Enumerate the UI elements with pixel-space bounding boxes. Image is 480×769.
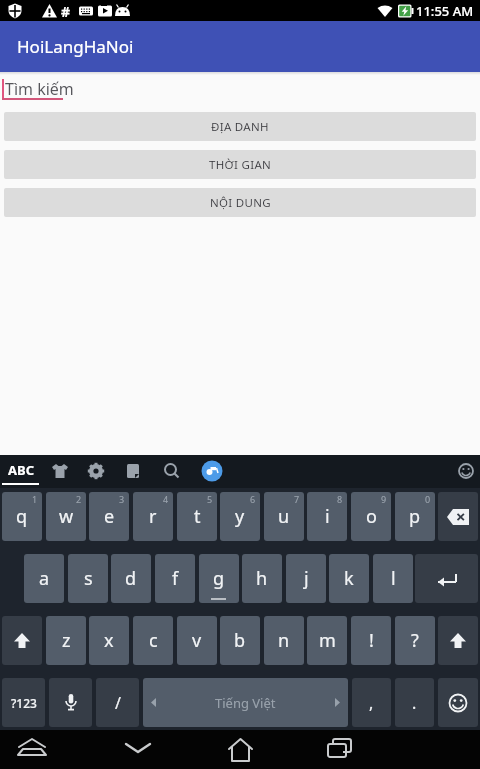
staticText: 2 (76, 493, 82, 505)
button[interactable]: k (329, 554, 369, 603)
staticText: 8 (337, 493, 343, 505)
staticText: v (192, 628, 202, 653)
staticText: ABC (8, 461, 34, 479)
button[interactable]: q (2, 492, 42, 541)
staticText: r (149, 504, 157, 529)
staticText: l (391, 566, 396, 591)
staticText: 9 (381, 493, 387, 505)
staticText: THỜI GIAN (209, 157, 272, 173)
button[interactable]: x (89, 616, 129, 665)
button[interactable]: z (46, 616, 86, 665)
staticText: ?123 (11, 695, 37, 711)
button[interactable]: , (352, 678, 391, 727)
button[interactable]: e (89, 492, 129, 541)
staticText: ĐỊA DANH (211, 119, 269, 135)
staticText: o (366, 504, 377, 529)
button[interactable] (14, 738, 50, 762)
button[interactable] (438, 678, 478, 727)
staticText: c (149, 628, 158, 653)
button[interactable]: g (199, 554, 239, 603)
button[interactable]: l (373, 554, 413, 603)
button[interactable]: p (395, 492, 435, 541)
staticText: s (84, 566, 93, 591)
button[interactable]: ĐỊA DANH (4, 112, 476, 141)
staticText: m (319, 628, 336, 653)
button[interactable]: NỘI DUNG (4, 188, 476, 217)
button[interactable]: m (307, 616, 347, 665)
staticText: 11:55 AM (416, 2, 474, 20)
staticText: 4 (163, 493, 169, 505)
staticText: / (115, 692, 121, 714)
button[interactable]: . (395, 678, 434, 727)
staticText: x (104, 628, 114, 653)
button[interactable]: ! (351, 616, 391, 665)
button[interactable]: c (133, 616, 173, 665)
staticText: Tiếng Việt (215, 694, 276, 712)
staticText: u (278, 504, 290, 529)
button[interactable]: h (242, 554, 282, 603)
staticText: t (194, 504, 201, 529)
staticText: 6 (250, 493, 256, 505)
staticText: g (213, 566, 225, 591)
staticText: . (412, 692, 417, 714)
button[interactable]: n (264, 616, 304, 665)
staticText: w (59, 504, 74, 529)
staticText: ! (369, 628, 374, 653)
staticText: 0 (425, 493, 431, 505)
staticText: z (62, 628, 71, 653)
button[interactable]: a (24, 554, 64, 603)
staticText: i (325, 504, 330, 529)
staticText: k (344, 566, 354, 591)
staticText: , (369, 692, 374, 714)
button[interactable]: f (155, 554, 195, 603)
button[interactable]: Tìm kiếm (0, 72, 480, 100)
staticText: 3 (119, 493, 125, 505)
button[interactable] (2, 616, 42, 665)
staticText: 5 (207, 493, 213, 505)
button[interactable] (122, 740, 154, 758)
staticText: j (304, 566, 309, 591)
button[interactable]: w (46, 492, 86, 541)
staticText: HoiLangHaNoi (17, 35, 134, 58)
button[interactable] (227, 737, 254, 763)
staticText: n (278, 628, 290, 653)
button[interactable]: THỜI GIAN (4, 150, 476, 179)
button[interactable] (415, 554, 478, 603)
button[interactable]: v (177, 616, 217, 665)
button[interactable]: o (351, 492, 391, 541)
button[interactable]: u (264, 492, 304, 541)
staticText: e (104, 504, 115, 529)
button[interactable] (438, 616, 478, 665)
staticText: NỘI DUNG (210, 195, 271, 211)
button[interactable]: s (68, 554, 108, 603)
staticText: d (125, 566, 137, 591)
button[interactable]: ?123 (2, 678, 45, 727)
button[interactable]: y (220, 492, 260, 541)
button[interactable]: i (307, 492, 347, 541)
button[interactable]: r (133, 492, 173, 541)
staticText: q (16, 504, 28, 529)
staticText: # (61, 2, 71, 21)
staticText: p (409, 504, 421, 529)
staticText: y (235, 504, 245, 529)
staticText: 7 (294, 493, 300, 505)
button[interactable]: ? (395, 616, 435, 665)
button[interactable]: ABC (8, 461, 40, 485)
button[interactable]: / (96, 678, 139, 727)
button[interactable]: d (111, 554, 151, 603)
staticText: f (172, 566, 179, 591)
staticText: 1 (32, 493, 38, 505)
staticText: b (234, 628, 246, 653)
button[interactable] (326, 738, 354, 762)
button[interactable]: j (286, 554, 326, 603)
button[interactable] (49, 678, 92, 727)
staticText: a (39, 566, 50, 591)
staticText: ? (411, 628, 419, 653)
button[interactable]: t (177, 492, 217, 541)
staticText: h (256, 566, 268, 591)
staticText: Tìm kiếm (5, 78, 74, 100)
button[interactable] (438, 492, 478, 541)
button[interactable]: b (220, 616, 260, 665)
button[interactable]: Tiếng Việt (143, 678, 348, 727)
